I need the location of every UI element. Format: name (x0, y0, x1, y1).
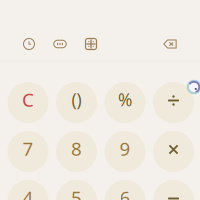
button[interactable]: Divide (153, 82, 194, 123)
staticText: % (118, 88, 132, 111)
button[interactable]: () (56, 82, 97, 123)
button[interactable]: 6 (104, 180, 145, 200)
staticText: () (71, 88, 81, 111)
button[interactable]: Keypad (53, 40, 66, 48)
staticText: 4 (22, 185, 33, 200)
button[interactable]: 4 (7, 180, 48, 200)
button[interactable]: Recents (23, 38, 35, 50)
button[interactable]: % (104, 82, 145, 123)
button[interactable]: Delete (163, 39, 177, 49)
button[interactable]: C (7, 82, 48, 123)
button[interactable]: 9 (104, 131, 145, 172)
button[interactable]: 5 (56, 180, 97, 200)
staticText: 9 (119, 136, 130, 161)
button[interactable]: 8 (56, 131, 97, 172)
button[interactable]: Subtract (153, 180, 194, 200)
button[interactable]: Scientific (85, 38, 97, 50)
staticText: 5 (71, 185, 82, 200)
button[interactable]: Multiply (153, 131, 194, 172)
staticText: 8 (71, 136, 82, 161)
staticText: 7 (22, 136, 33, 161)
button[interactable]: 7 (7, 131, 48, 172)
staticText: C (22, 87, 34, 112)
staticText: 6 (119, 185, 130, 200)
